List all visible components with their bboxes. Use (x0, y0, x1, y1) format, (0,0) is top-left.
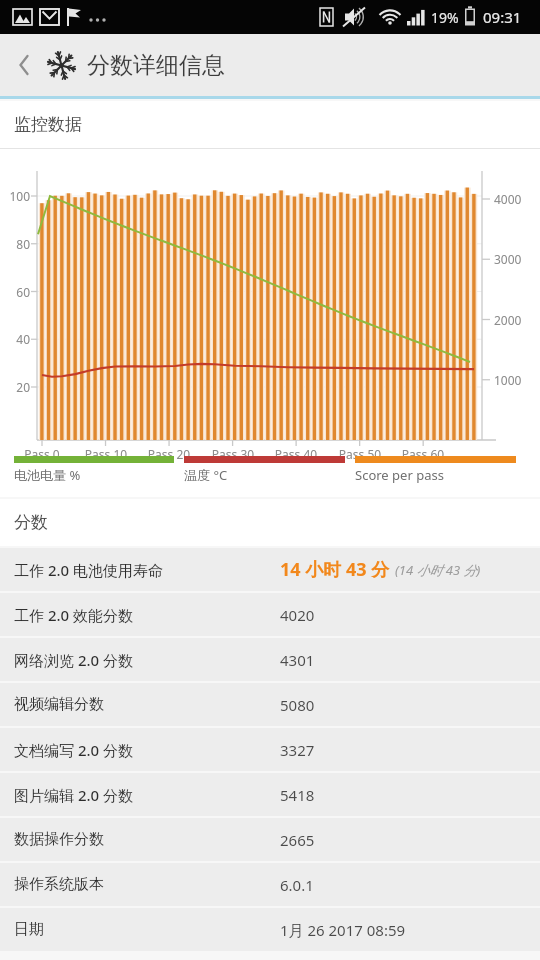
staticText: Pass 40 (272, 446, 320, 462)
staticText: 60 (2, 284, 30, 300)
staticText: 工作 2.0 电池使用寿命 (14, 560, 280, 580)
staticText: 40 (2, 331, 30, 347)
button[interactable]: 图片编辑 2.0 分数 (0, 773, 540, 816)
staticText: 3000 (494, 251, 522, 267)
staticText: Pass 0 (18, 446, 66, 462)
staticText: 日期 (14, 920, 280, 939)
staticText: Pass 60 (399, 446, 447, 462)
staticText: 1000 (494, 372, 522, 388)
button[interactable]: 日期 (0, 908, 540, 951)
staticText: 监控数据 (14, 114, 82, 135)
staticText: 100 (2, 188, 30, 204)
staticText: 2000 (494, 312, 522, 328)
staticText: 6.0.1 (280, 875, 314, 895)
staticText: 数据操作分数 (14, 830, 280, 849)
staticText: 4020 (280, 605, 315, 625)
staticText: (14 小时 43 分) (395, 561, 481, 579)
staticText: 5418 (280, 785, 315, 805)
staticText: 19% (431, 8, 459, 27)
button[interactable]: 数据操作分数 (0, 818, 540, 861)
staticText: 分数 (14, 512, 48, 533)
staticText: 网络浏览 2.0 分数 (14, 650, 280, 670)
staticText: Pass 50 (336, 446, 384, 462)
staticText: Pass 30 (209, 446, 257, 462)
staticText: 图片编辑 2.0 分数 (14, 785, 280, 805)
staticText: 4000 (494, 191, 522, 207)
button[interactable]: 工作 2.0 效能分数 (0, 593, 540, 636)
staticText: 温度 °C (184, 466, 228, 484)
staticText: 2665 (280, 830, 315, 850)
staticText: 文档编写 2.0 分数 (14, 740, 280, 760)
staticText: 操作系统版本 (14, 875, 280, 894)
button[interactable]: 网络浏览 2.0 分数 (0, 638, 540, 681)
staticText: 电池电量 % (14, 466, 81, 484)
staticText: Pass 20 (145, 446, 193, 462)
staticText: 14 小时 43 分 (280, 557, 390, 582)
staticText: Score per pass (355, 466, 444, 484)
staticText: Pass 10 (82, 446, 130, 462)
button[interactable]: Back (0, 34, 540, 96)
staticText: 80 (2, 236, 30, 252)
button[interactable]: 视频编辑分数 (0, 683, 540, 726)
staticText: 4301 (280, 650, 315, 670)
staticText: 分数详细信息 (87, 51, 225, 80)
button[interactable]: 文档编写 2.0 分数 (0, 728, 540, 771)
staticText: 09:31 (483, 7, 522, 27)
staticText: 1月 26 2017 08:59 (280, 920, 406, 940)
button[interactable]: Back (4, 45, 44, 85)
staticText: 视频编辑分数 (14, 695, 280, 714)
button[interactable]: 工作 2.0 电池使用寿命 (0, 548, 540, 591)
staticText: 5080 (280, 695, 315, 715)
staticText: 3327 (280, 740, 315, 760)
staticText: 20 (2, 379, 30, 395)
button[interactable]: 操作系统版本 (0, 863, 540, 906)
staticText: 工作 2.0 效能分数 (14, 605, 280, 625)
